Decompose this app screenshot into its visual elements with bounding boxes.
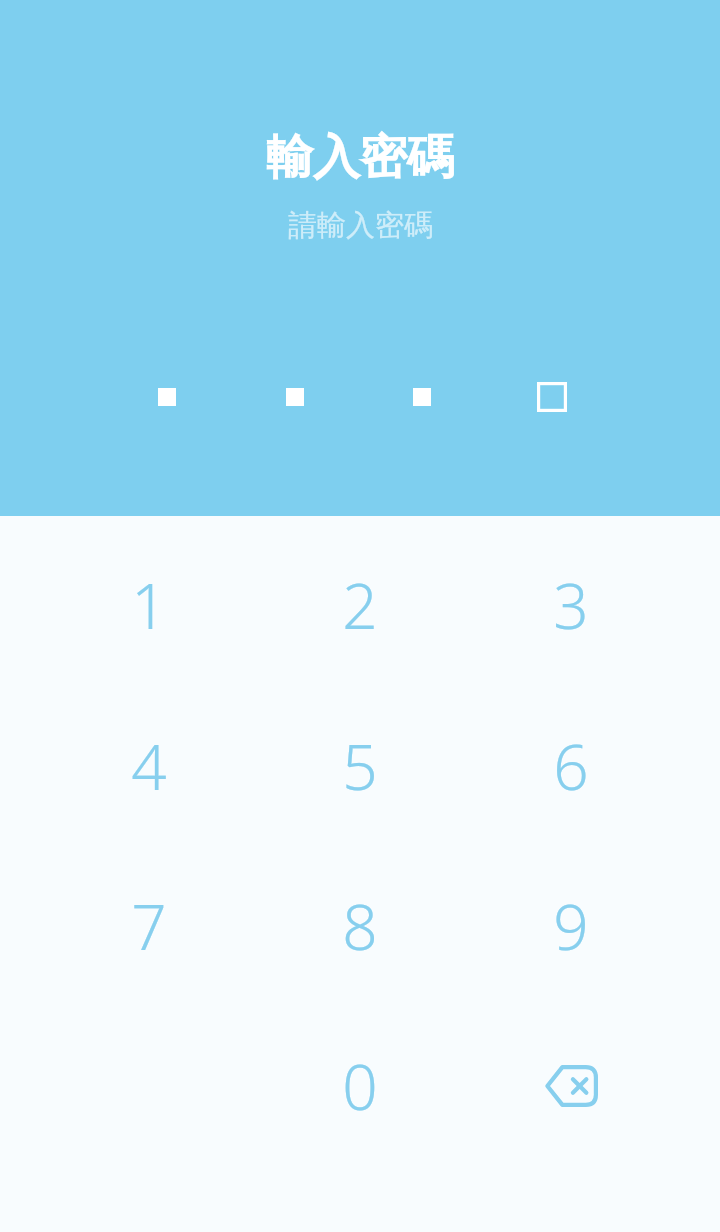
staticText: 3 [553,563,589,647]
button[interactable]: 7 [74,851,224,1001]
button[interactable]: 0 [285,1011,435,1161]
button[interactable]: 3 [496,530,646,680]
button[interactable]: 1 [74,530,224,680]
staticText: 0 [342,1044,378,1128]
staticText: 2 [342,563,378,647]
button[interactable]: 6 [496,691,646,841]
button[interactable]: 8 [285,851,435,1001]
staticText: 8 [342,884,378,968]
button[interactable]: Backspace [496,1011,646,1161]
button[interactable]: 9 [496,851,646,1001]
staticText: 輸入密碼 [266,128,454,187]
staticText: 9 [553,884,589,968]
button[interactable]: 5 [285,691,435,841]
staticText: 7 [131,884,167,968]
button[interactable]: 2 [285,530,435,680]
staticText: 4 [131,724,167,808]
staticText: 6 [553,724,589,808]
staticText: 請輸入密碼 [288,207,433,244]
button[interactable]: 4 [74,691,224,841]
staticText: 1 [131,563,167,647]
staticText: 5 [342,724,378,808]
